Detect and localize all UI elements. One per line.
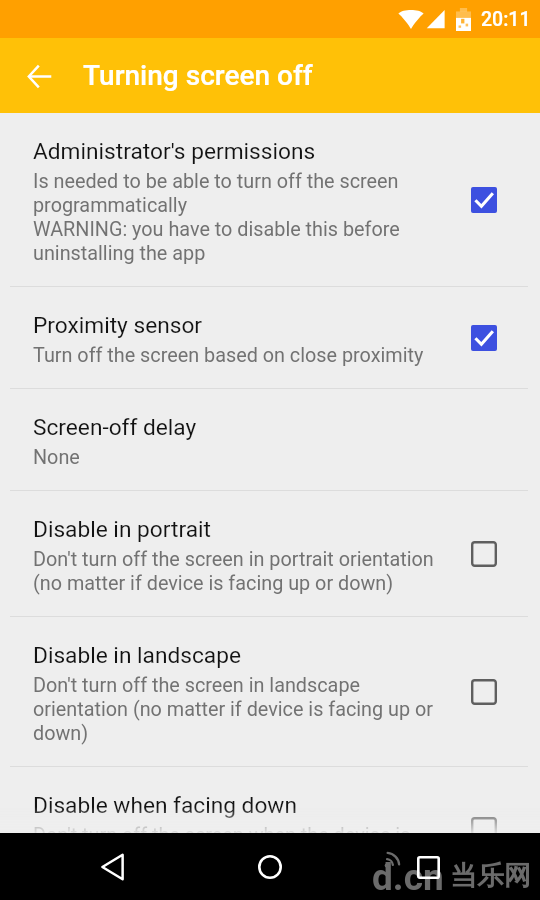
button[interactable]: Disable in landscape xyxy=(0,617,540,766)
staticText: 当乐网 xyxy=(450,859,531,893)
staticText: 20:11 xyxy=(481,8,531,31)
button[interactable]: Disable in portrait xyxy=(0,491,540,616)
staticText: Don't turn off the screen when the devic… xyxy=(33,823,441,833)
staticText: Proximity sensor xyxy=(33,312,203,339)
button[interactable]: Administrator's permissions xyxy=(0,113,540,286)
staticText: Is needed to be able to turn off the scr… xyxy=(33,169,441,265)
button[interactable]: Proximity sensor xyxy=(0,287,540,388)
button[interactable]: Recent apps xyxy=(406,845,450,889)
staticText: Turn off the screen based on close proxi… xyxy=(33,343,424,367)
staticText: d.cn xyxy=(372,856,444,899)
button[interactable]: Home xyxy=(248,845,292,889)
button[interactable]: Unchecked xyxy=(458,666,510,718)
button[interactable]: Checked xyxy=(458,174,510,226)
staticText: Disable in landscape xyxy=(33,642,241,669)
staticText: Don't turn off the screen in landscape o… xyxy=(33,673,441,745)
button[interactable]: Checked xyxy=(458,312,510,364)
button[interactable]: Back xyxy=(90,845,134,889)
button[interactable]: Unchecked xyxy=(458,528,510,580)
staticText: Screen-off delay xyxy=(33,414,197,441)
button[interactable]: Unchecked xyxy=(458,804,510,833)
staticText: Disable when facing down xyxy=(33,792,297,819)
staticText: Turning screen off xyxy=(83,59,313,92)
staticText: Disable in portrait xyxy=(33,516,211,543)
button[interactable]: Navigate up xyxy=(16,52,64,100)
staticText: Don't turn off the screen in portrait or… xyxy=(33,547,441,595)
staticText: Administrator's permissions xyxy=(33,138,316,165)
staticText: None xyxy=(33,445,80,469)
button[interactable]: Screen-off delay xyxy=(0,389,540,490)
button[interactable]: Disable when facing down xyxy=(0,767,540,833)
